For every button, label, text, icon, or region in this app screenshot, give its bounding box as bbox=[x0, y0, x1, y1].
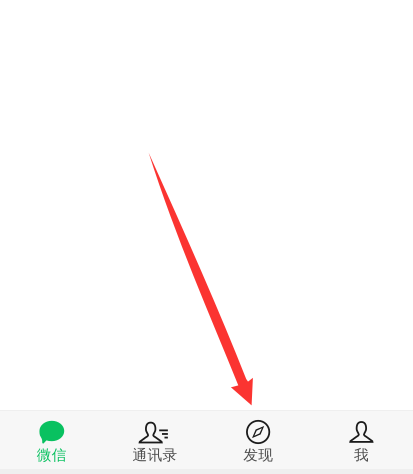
button[interactable]: 发现 bbox=[206, 410, 310, 470]
button[interactable]: 我 bbox=[310, 410, 413, 470]
button[interactable]: 通讯录 bbox=[103, 410, 206, 470]
staticText: 发现 bbox=[243, 446, 273, 464]
staticText: 我 bbox=[354, 446, 369, 464]
staticText: 通讯录 bbox=[132, 446, 177, 464]
staticText: 微信 bbox=[37, 446, 67, 464]
button[interactable]: 微信 bbox=[0, 410, 103, 470]
